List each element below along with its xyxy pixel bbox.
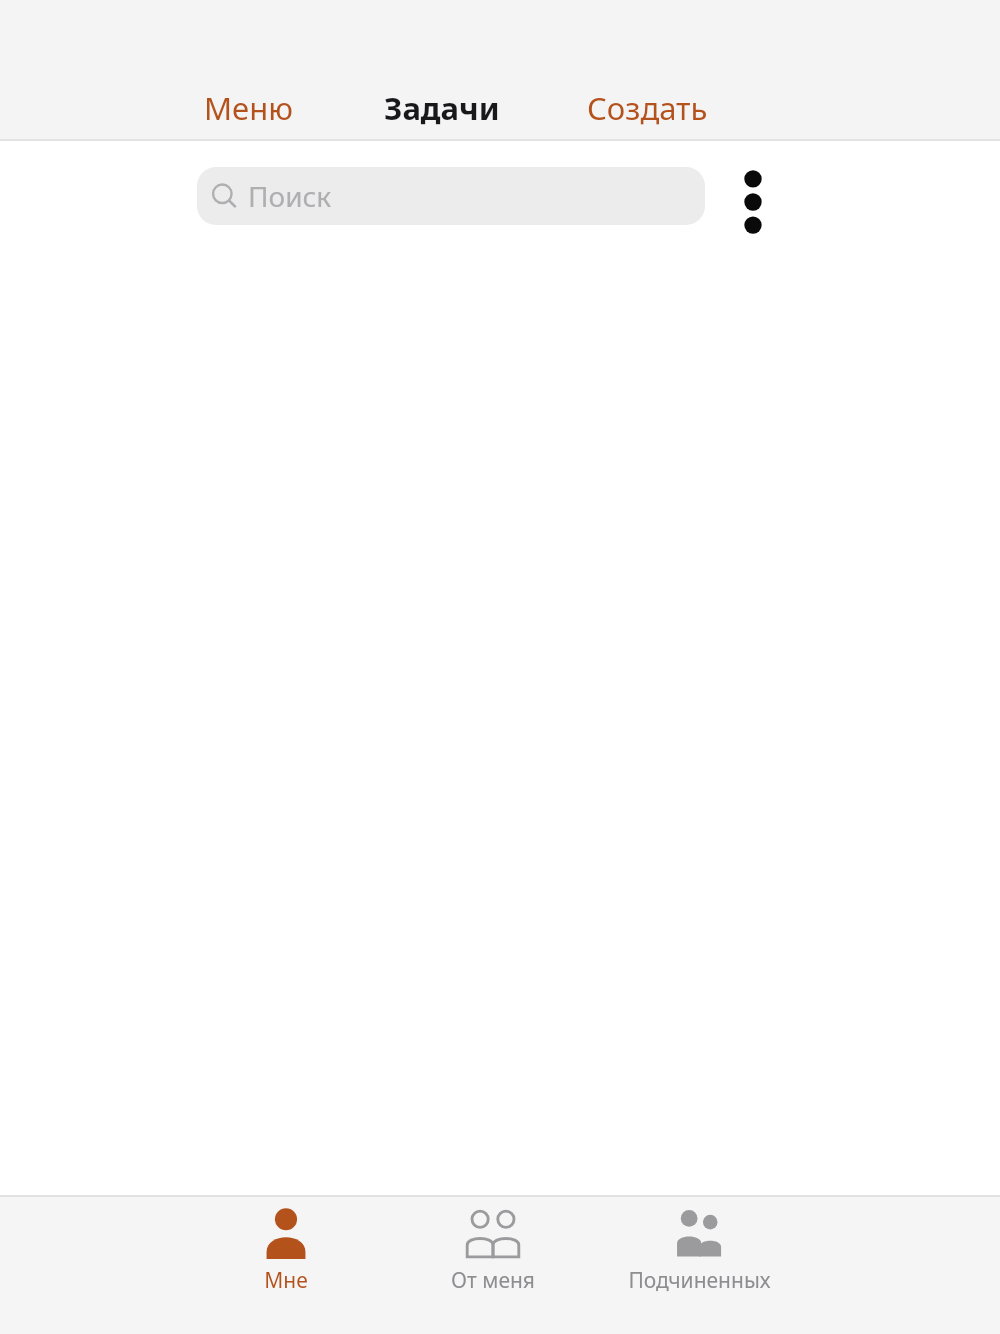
button[interactable]: Подчиненных [596,1197,803,1297]
button[interactable]: От меня [389,1197,596,1297]
button[interactable]: Создать [537,77,757,139]
button[interactable]: Поиск [197,167,705,225]
staticText: Поиск [248,177,332,215]
staticText: Создать [587,87,708,129]
button[interactable]: Задачи [347,77,537,139]
staticText: Мне [264,1266,308,1295]
staticText: Подчиненных [628,1266,771,1295]
staticText: От меня [451,1266,535,1295]
staticText: Меню [204,87,294,129]
button[interactable]: Ещё [705,167,800,237]
staticText: Задачи [384,87,500,129]
button[interactable]: Меню [150,77,347,139]
button[interactable]: Мне [182,1197,389,1297]
